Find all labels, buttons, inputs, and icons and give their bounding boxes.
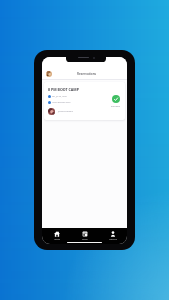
staticText: Sat, Jul 30, 2022 bbox=[52, 95, 67, 98]
staticText: Jessica Daniels bbox=[58, 110, 73, 113]
staticText: North Boulder Gym bbox=[52, 101, 71, 104]
staticText: PROFILE bbox=[109, 238, 117, 241]
button[interactable]: PROFILE bbox=[99, 231, 127, 241]
button[interactable]: Account bbox=[46, 71, 52, 77]
staticText: Booked bbox=[111, 104, 120, 107]
staticText: Reservations bbox=[77, 72, 97, 76]
button[interactable]: 8 PM BOOT CAMP bbox=[44, 82, 125, 120]
button[interactable]: BOOK bbox=[71, 231, 99, 241]
staticText: HOME bbox=[54, 238, 60, 241]
staticText: 8 PM BOOT CAMP bbox=[48, 87, 79, 92]
button[interactable]: HOME bbox=[42, 231, 71, 241]
staticText: BOOK bbox=[82, 238, 88, 241]
